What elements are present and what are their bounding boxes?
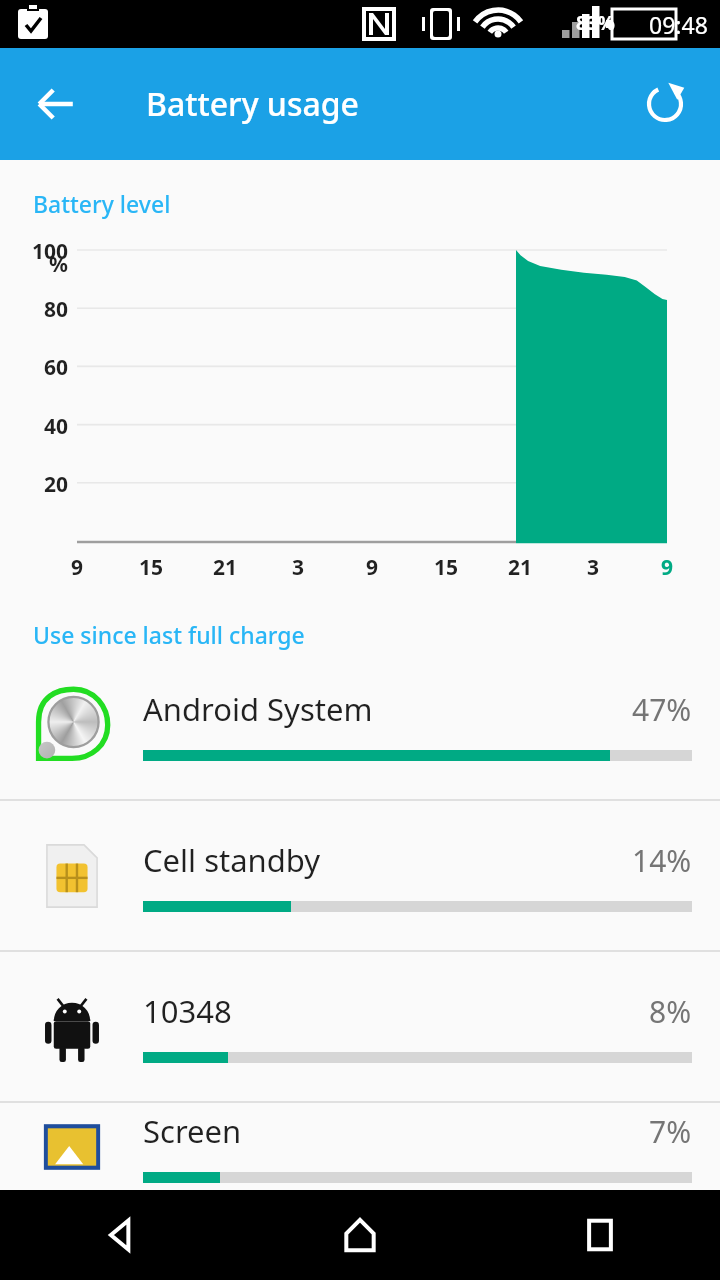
staticText: 100 bbox=[0, 237, 68, 266]
staticText: 15 bbox=[126, 553, 176, 582]
staticText: Battery level bbox=[33, 188, 171, 219]
staticText: Battery usage bbox=[146, 82, 359, 126]
button[interactable]: Recent apps bbox=[480, 1190, 720, 1280]
button[interactable]: Cell standby bbox=[0, 801, 720, 950]
staticText: 9 bbox=[52, 553, 102, 582]
staticText: 40 bbox=[0, 412, 68, 441]
staticText: 20 bbox=[0, 470, 68, 499]
button[interactable]: Android System bbox=[0, 650, 720, 799]
staticText: 8% bbox=[649, 991, 692, 1032]
button[interactable]: Back bbox=[26, 74, 86, 134]
staticText: % bbox=[0, 250, 68, 279]
staticText: 9 bbox=[642, 553, 692, 582]
staticText: Cell standby bbox=[143, 839, 632, 881]
staticText: 10348 bbox=[143, 990, 649, 1032]
button[interactable]: 10348 bbox=[0, 952, 720, 1101]
staticText: 09:48 bbox=[649, 9, 708, 40]
button[interactable]: Back bbox=[0, 1190, 240, 1280]
staticText: 7% bbox=[649, 1111, 692, 1152]
staticText: 21 bbox=[200, 553, 250, 582]
staticText: 15 bbox=[421, 553, 471, 582]
button[interactable]: Home bbox=[240, 1190, 480, 1280]
staticText: 21 bbox=[495, 553, 545, 582]
staticText: 9 bbox=[347, 553, 397, 582]
staticText: 47% bbox=[632, 689, 692, 730]
staticText: 60 bbox=[0, 353, 68, 382]
staticText: 14% bbox=[632, 840, 692, 881]
staticText: Android System bbox=[143, 688, 632, 730]
staticText: Screen bbox=[143, 1110, 649, 1152]
button[interactable]: Screen bbox=[0, 1103, 720, 1190]
staticText: 3 bbox=[568, 553, 618, 582]
button[interactable]: Refresh bbox=[634, 73, 696, 135]
staticText: Use since last full charge bbox=[33, 619, 305, 650]
staticText: 83% bbox=[576, 10, 615, 36]
staticText: 3 bbox=[273, 553, 323, 582]
staticText: 80 bbox=[0, 295, 68, 324]
